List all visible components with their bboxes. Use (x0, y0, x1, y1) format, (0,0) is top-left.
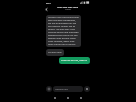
staticText: I'm just okay (48, 51, 62, 54)
button[interactable]: Recents (77, 94, 85, 102)
button[interactable]: Back (51, 94, 59, 102)
button[interactable]: Modern has tried everything with sarcast… (46, 15, 81, 47)
staticText: +234 903 456 7875 (57, 5, 79, 8)
button[interactable]: Send (84, 86, 90, 92)
button[interactable]: Add attachment (46, 86, 52, 92)
staticText: 9:41 (46, 1, 51, 4)
staticText: What do you do, help us (61, 59, 88, 62)
button[interactable]: I'm just okay (46, 49, 64, 56)
staticText: Message text (55, 88, 69, 91)
button[interactable]: Message text (53, 86, 83, 92)
button[interactable]: Home (64, 94, 72, 102)
button[interactable]: What do you do, help us (59, 57, 90, 64)
staticText: Modern has tried everything with sarcast… (48, 16, 79, 46)
staticText: Transit (65, 8, 72, 11)
button[interactable]: Back (43, 6, 50, 13)
